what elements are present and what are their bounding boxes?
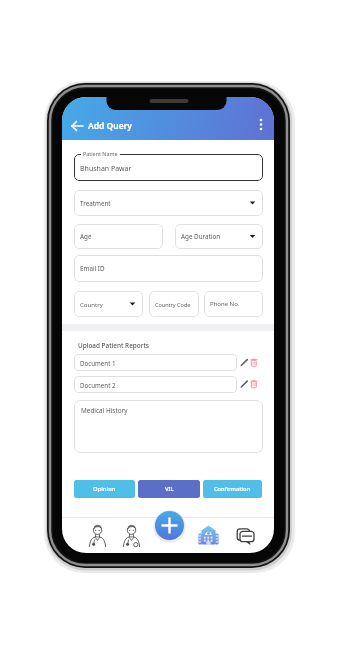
staticText: Upload Patient Reports [78, 341, 149, 350]
button[interactable] [197, 524, 220, 547]
button[interactable]: Document 1 [74, 354, 237, 371]
button[interactable] [238, 378, 250, 391]
staticText: Document 2 [80, 381, 116, 389]
staticText: Medical History [81, 406, 128, 415]
button[interactable]: Age Duration [175, 224, 263, 249]
button[interactable]: Confirmation [203, 480, 262, 498]
staticText: Bhushan Pawar [80, 164, 132, 174]
button[interactable]: Country Code [149, 291, 199, 317]
staticText: Age Duration [181, 232, 221, 241]
button[interactable] [155, 511, 184, 540]
button[interactable]: VIL [138, 480, 200, 498]
staticText: Document 1 [80, 359, 116, 367]
button[interactable]: Country [74, 291, 143, 317]
button[interactable]: Email ID [74, 255, 263, 282]
button[interactable] [234, 525, 257, 548]
staticText: Country [80, 300, 103, 308]
staticText: Email ID [80, 264, 105, 273]
staticText: Phone No. [210, 300, 240, 308]
button[interactable] [252, 114, 270, 138]
button[interactable]: Phone No. [204, 291, 263, 317]
staticText: Opinion [93, 485, 116, 493]
staticText: Add Query [88, 120, 132, 132]
button[interactable] [86, 524, 109, 547]
button[interactable] [66, 113, 90, 137]
staticText: Confirmation [214, 485, 251, 493]
button[interactable] [120, 524, 143, 547]
button[interactable]: Age [74, 224, 163, 249]
button[interactable]: Medical History [74, 400, 263, 453]
staticText: Treatment [80, 199, 111, 208]
button[interactable]: Treatment [74, 190, 263, 216]
button[interactable]: Document 2 [74, 376, 237, 393]
button[interactable] [249, 378, 260, 391]
button[interactable]: Bhushan Pawar [74, 154, 263, 181]
staticText: Patient Name [83, 150, 118, 157]
staticText: Age [80, 232, 92, 241]
staticText: Country Code [155, 301, 191, 308]
button[interactable] [249, 356, 260, 369]
button[interactable]: Opinion [74, 480, 135, 498]
button[interactable] [238, 356, 250, 369]
staticText: VIL [165, 485, 174, 493]
